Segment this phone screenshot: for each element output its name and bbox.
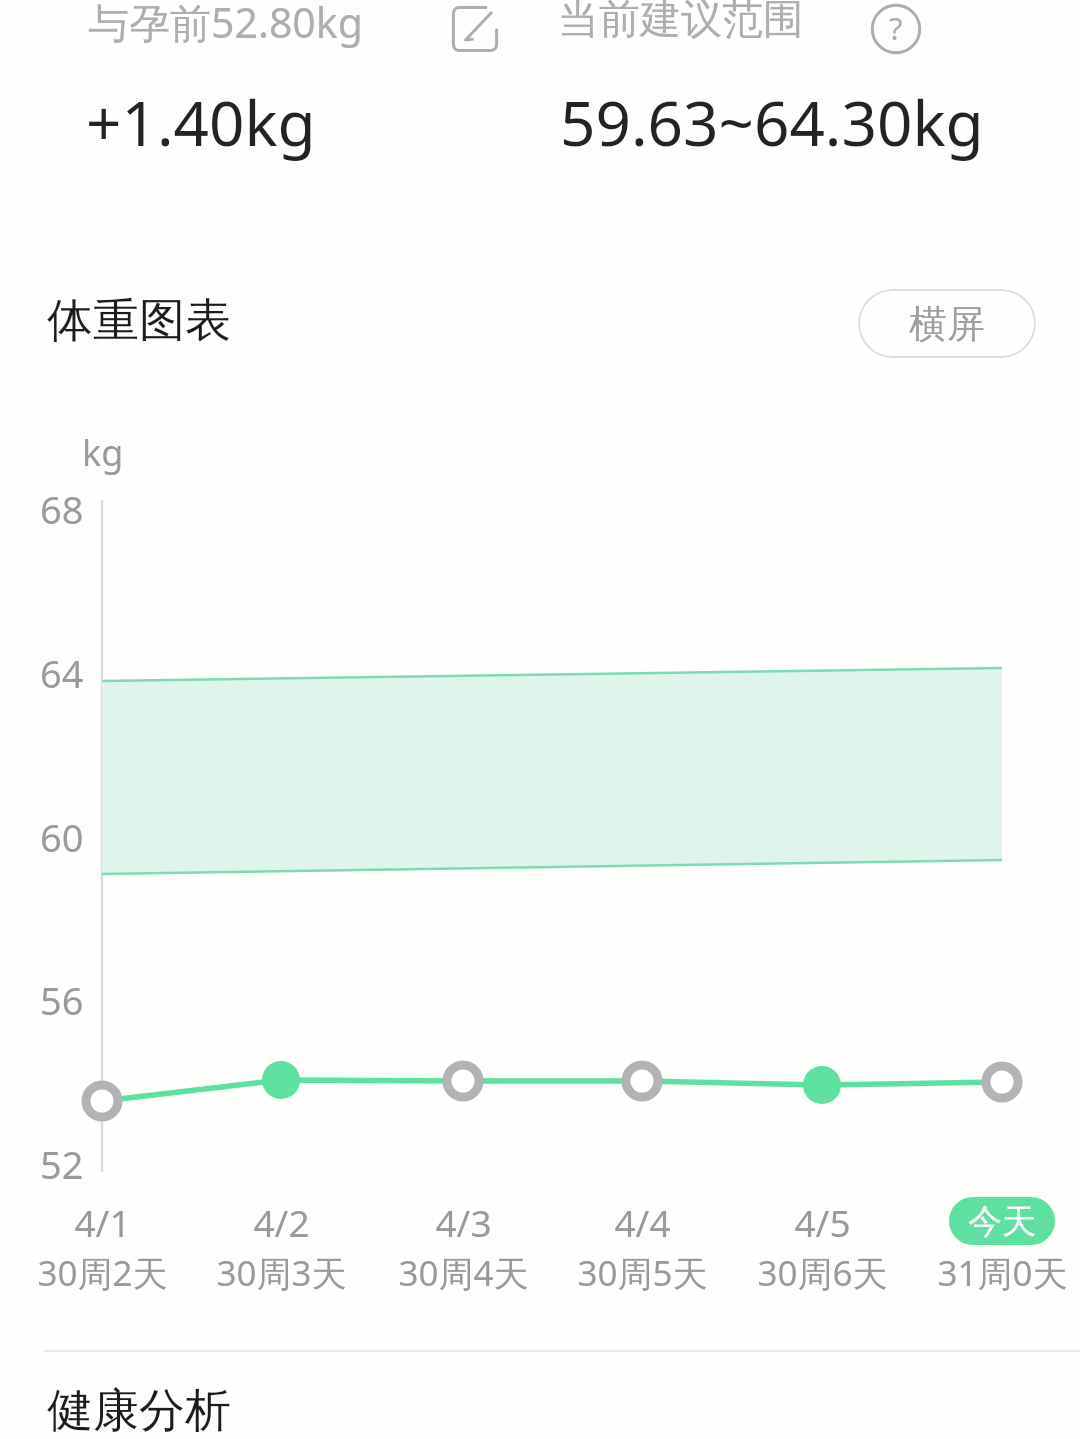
button[interactable]: 今天 [902,1197,1080,1297]
button[interactable]: 4/5 [722,1197,922,1297]
staticText: kg [82,428,124,477]
staticText: 56 [40,974,84,1022]
staticText: 4/4 [614,1197,671,1245]
staticText: 4/1 [74,1197,131,1245]
staticText: 今天 [968,1200,1036,1243]
staticText: 横屏 [909,300,985,348]
button[interactable]: 健康分析 [47,1382,231,1439]
staticText: 体重图表 [47,292,231,350]
staticText: 健康分析 [47,1382,231,1439]
button[interactable]: 4/2 [181,1197,381,1297]
staticText: 4/3 [435,1197,492,1245]
button[interactable]: 与孕前52.80kg [88,0,363,50]
staticText: 30周3天 [216,1249,347,1297]
button[interactable]: 4/3 [363,1197,563,1297]
button[interactable]: Edit pre-pregnancy weight [448,2,502,56]
button[interactable]: 4/1 [2,1197,202,1297]
staticText: 30周6天 [757,1249,888,1297]
staticText: 30周5天 [577,1249,708,1297]
staticText: 60 [40,811,84,859]
staticText: +1.40kg [86,80,316,164]
staticText: 52 [40,1138,84,1186]
staticText: 30周4天 [398,1249,529,1297]
staticText: 68 [40,483,84,531]
button[interactable]: 当前建议范围 [558,0,804,46]
button[interactable]: 4/4 [542,1197,742,1297]
staticText: 59.63~64.30kg [560,80,984,164]
button[interactable]: 横屏 [858,289,1036,358]
staticText: 30周2天 [37,1249,168,1297]
staticText: 4/2 [253,1197,310,1245]
staticText: 31周0天 [937,1249,1068,1297]
staticText: ? [889,7,903,49]
button[interactable]: Help about suggested range [869,2,923,56]
staticText: 4/5 [794,1197,851,1245]
staticText: 与孕前52.80kg [88,0,363,50]
staticText: 当前建议范围 [558,0,804,46]
staticText: 64 [40,647,84,695]
